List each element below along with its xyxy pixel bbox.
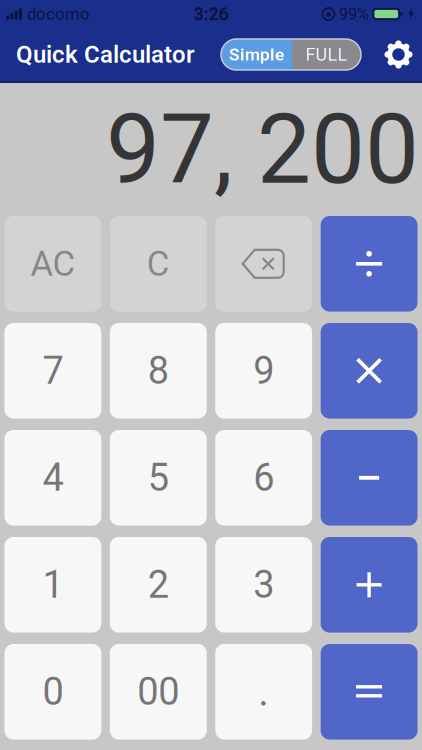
staticText: Simple (229, 44, 284, 65)
staticText: 3 (253, 562, 274, 607)
staticText: FULL (305, 44, 347, 65)
staticText: 8 (148, 348, 169, 393)
staticText: 00 (137, 669, 179, 714)
staticText: 0 (42, 669, 63, 714)
staticText: 5 (148, 455, 169, 500)
button[interactable]: 8 (110, 323, 207, 419)
staticText: 99% (339, 5, 369, 23)
staticText: 97, 200 (106, 94, 419, 206)
staticText: docomo (27, 4, 90, 24)
button[interactable]: 00 (110, 644, 207, 740)
button[interactable]: . (215, 644, 312, 740)
button[interactable]: 6 (215, 430, 312, 526)
staticText: 4 (42, 455, 63, 500)
button[interactable]: 5 (110, 430, 207, 526)
button[interactable]: 2 (110, 537, 207, 633)
button[interactable]: Settings (384, 40, 413, 69)
staticText: 1 (42, 562, 63, 607)
staticText: 6 (253, 455, 274, 500)
button[interactable]: 4 (4, 430, 101, 526)
staticText: AC (30, 243, 75, 284)
button[interactable]: C (110, 216, 207, 312)
button[interactable]: Subtract (321, 430, 418, 526)
button[interactable]: Equals (321, 644, 418, 740)
button[interactable]: Divide (321, 216, 418, 312)
button[interactable]: 9 (215, 323, 312, 419)
staticText: C (147, 243, 170, 284)
button[interactable]: Simple (221, 39, 292, 70)
staticText: . (258, 668, 269, 715)
staticText: 9 (253, 348, 274, 393)
staticText: 7 (42, 348, 63, 393)
button[interactable]: FULL (292, 39, 361, 70)
button[interactable]: 0 (4, 644, 101, 740)
button[interactable]: 7 (4, 323, 101, 419)
button[interactable]: Delete (215, 216, 312, 312)
button[interactable]: Multiply (321, 323, 418, 419)
button[interactable]: 3 (215, 537, 312, 633)
staticText: 2 (148, 562, 169, 607)
staticText: 3:26 (193, 3, 228, 25)
button[interactable]: Add (321, 537, 418, 633)
button[interactable]: 1 (4, 537, 101, 633)
staticText: Quick Calculator (16, 40, 195, 68)
button[interactable]: AC (4, 216, 101, 312)
